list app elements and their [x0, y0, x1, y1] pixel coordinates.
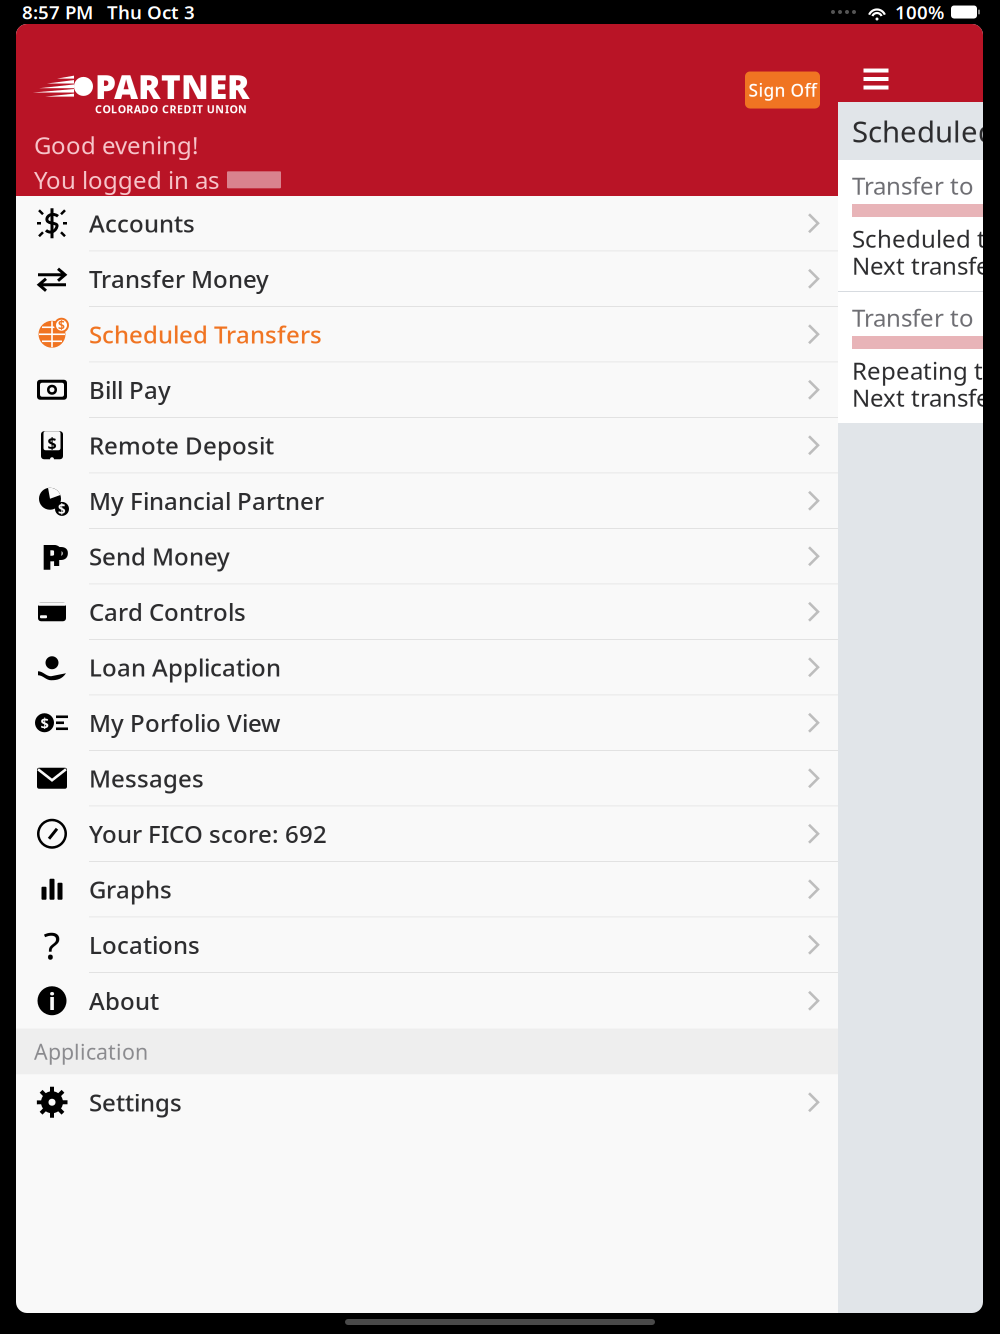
staticText: Scheduled Transfers: [89, 318, 322, 350]
staticText: P: [52, 538, 69, 573]
button[interactable]: Your FICO score: 692: [16, 806, 838, 862]
button[interactable]: $: [16, 695, 838, 751]
button[interactable]: Menu: [854, 57, 898, 101]
staticText: Accounts: [89, 207, 195, 239]
staticText: 100%: [895, 0, 944, 24]
staticText: Sign Off: [748, 78, 816, 101]
staticText: My Financial Partner: [89, 485, 324, 517]
staticText: $: [40, 713, 48, 732]
button[interactable]: Card Controls: [16, 584, 838, 640]
staticText: $: [58, 500, 66, 518]
staticText: Graphs: [89, 873, 172, 905]
staticText: Repeating transfer: [852, 355, 1000, 386]
staticText: Remote Deposit: [89, 429, 274, 461]
button[interactable]: Sign Off: [745, 71, 820, 108]
staticText: Transfer Money: [89, 263, 269, 295]
staticText: Send Money: [89, 540, 230, 572]
staticText: i: [48, 985, 55, 1017]
button[interactable]: Loan Application: [16, 640, 838, 695]
staticText: My Porfolio View: [89, 707, 280, 739]
staticText: Next transfer: [852, 250, 1000, 281]
staticText: Thu Oct 3: [107, 0, 195, 24]
staticText: Your FICO score: 692: [89, 818, 327, 850]
button[interactable]: Messages: [16, 751, 838, 806]
staticText: Good evening!: [34, 129, 198, 161]
button[interactable]: $: [16, 418, 838, 473]
button[interactable]: Transfer Money: [16, 251, 838, 307]
button[interactable]: Settings: [16, 1074, 838, 1130]
staticText: You logged in as: [34, 164, 219, 196]
staticText: Application: [34, 1037, 148, 1066]
button[interactable]: Graphs: [16, 862, 838, 917]
staticText: Locations: [89, 929, 200, 961]
staticText: Next transfer: [852, 382, 1000, 413]
staticText: ?: [43, 919, 60, 970]
button[interactable]: Bill Pay: [16, 362, 838, 418]
staticText: Scheduled Transfers: [852, 111, 1000, 150]
staticText: Messages: [89, 762, 204, 794]
button[interactable]: Accounts: [16, 196, 838, 251]
staticText: Card Controls: [89, 596, 246, 628]
button[interactable]: P: [16, 529, 838, 584]
staticText: P: [41, 533, 63, 579]
staticText: Transfer to: [852, 302, 974, 333]
button[interactable]: $: [16, 307, 838, 362]
button[interactable]: ?: [16, 917, 838, 973]
staticText: $: [58, 317, 65, 333]
button[interactable]: i: [16, 973, 838, 1028]
staticText: $: [47, 432, 56, 453]
staticText: Settings: [89, 1086, 182, 1118]
staticText: 8:57 PM: [22, 0, 93, 24]
staticText: PARTNER: [95, 64, 250, 109]
staticText: About: [89, 985, 159, 1017]
staticText: Loan Application: [89, 651, 281, 683]
button[interactable]: $: [16, 473, 838, 529]
staticText: Transfer to: [852, 170, 974, 201]
staticText: Scheduled transfer: [852, 223, 1000, 254]
staticText: Bill Pay: [89, 374, 171, 406]
staticText: COLORADO CREDIT UNION: [95, 102, 247, 116]
